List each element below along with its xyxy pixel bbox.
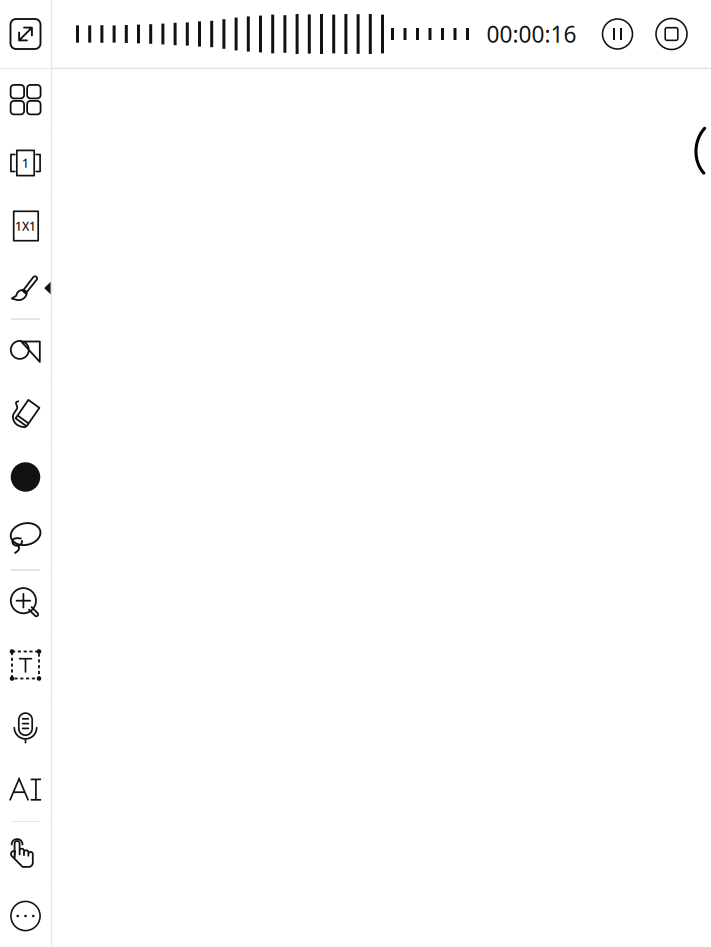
button[interactable]: Stop recording [648,11,694,57]
button[interactable]: Pause recording [594,11,640,57]
button[interactable]: Pages [0,69,51,131]
button[interactable]: Eraser [0,383,51,445]
button[interactable]: Canvas size [0,195,51,257]
button[interactable]: AI tools [0,759,51,821]
staticText: 1X1 [15,218,36,234]
button[interactable]: Brush [0,257,51,319]
staticText: 00:00:16 [486,19,576,49]
button[interactable]: More options [0,885,51,947]
button[interactable]: Record audio [0,697,51,759]
button[interactable]: Touch mode [0,822,51,884]
button[interactable]: Text [0,634,51,696]
staticText: 1 [22,155,29,171]
button[interactable]: Expand canvas [0,0,51,68]
button[interactable]: Zoom [0,571,51,633]
button[interactable]: Colour [0,446,51,508]
button[interactable]: Lasso [0,508,51,570]
button[interactable]: Page 1 [0,132,51,194]
button[interactable]: Shapes [0,320,51,382]
